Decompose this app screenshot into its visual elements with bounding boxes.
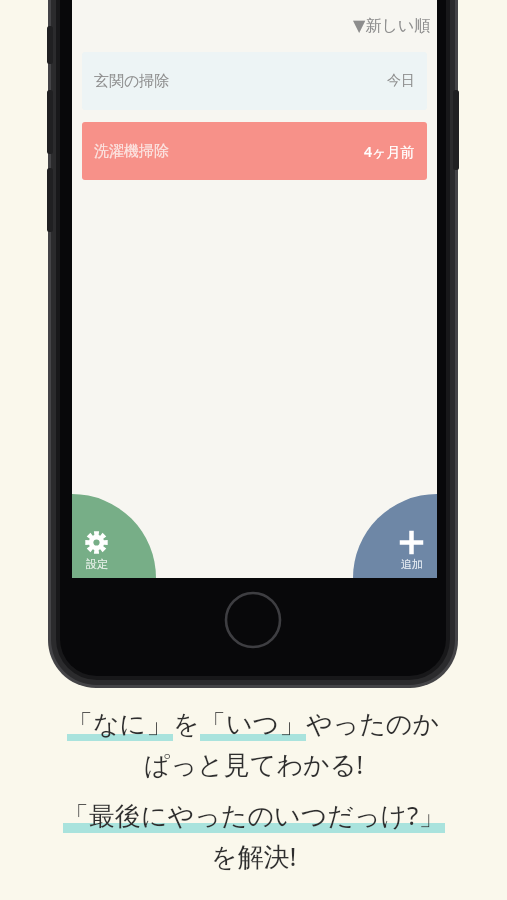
staticText: 洗濯機掃除 [94,142,169,161]
button[interactable]: ▼新しい順 [72,0,437,52]
staticText: ぱっと見てわかる! [144,746,364,782]
staticText: 4ヶ月前 [364,142,415,161]
staticText: 追加 [401,557,423,571]
staticText: 今日 [387,72,415,90]
staticText: やったのか [306,708,440,741]
staticText: 「いつ」 [200,708,306,741]
staticText: 玄関の掃除 [94,72,170,91]
staticText: 「なに」 [67,708,173,741]
button[interactable]: Add [353,494,437,578]
button[interactable]: Settings [72,494,156,578]
staticText: 「最後にやったのいつだっけ?」 [63,797,445,833]
staticText: を [173,708,200,741]
other: Settings [85,531,108,554]
staticText: 設定 [86,557,108,571]
staticText: ▼新しい順 [353,16,431,36]
staticText: を解決! [211,838,297,874]
button[interactable]: 洗濯機掃除 [82,122,427,180]
other: Add [399,530,424,555]
button[interactable]: 玄関の掃除 [82,52,427,110]
